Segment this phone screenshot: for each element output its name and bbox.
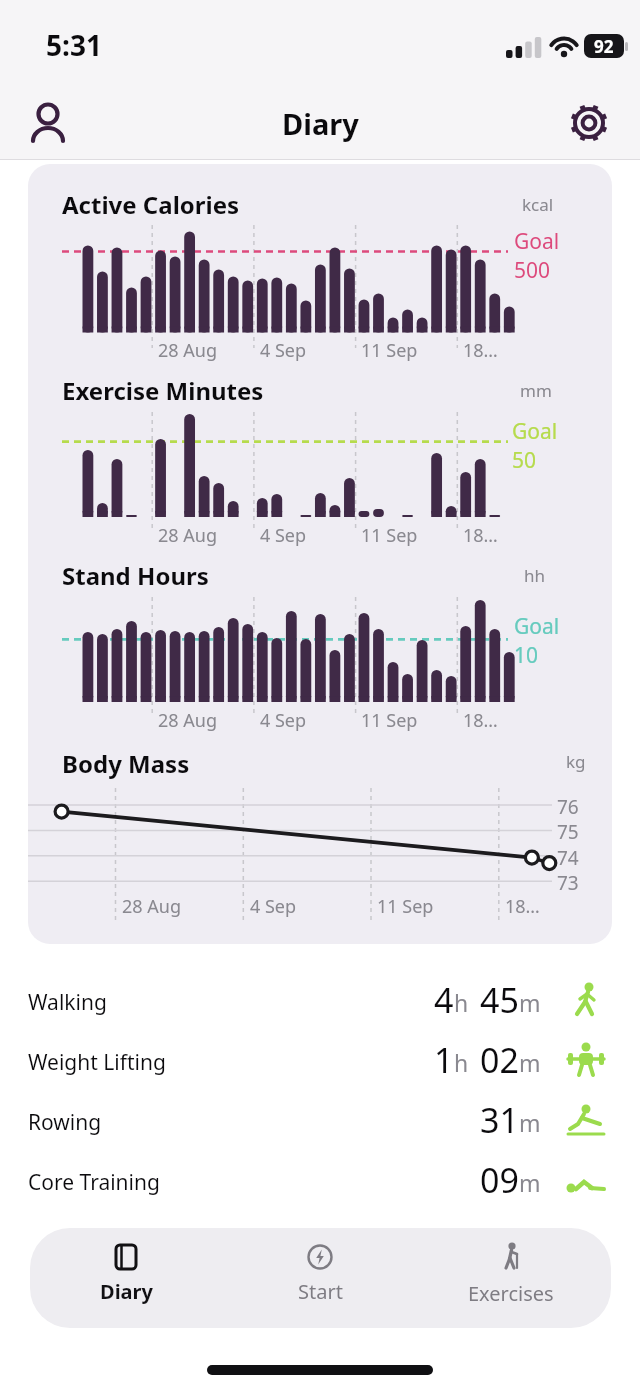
staticText: 1 (434, 1037, 454, 1083)
staticText: Start (298, 1278, 343, 1305)
staticText: m (519, 1107, 541, 1138)
staticText: 09 (480, 1157, 519, 1203)
button[interactable]: Walking (0, 970, 640, 1030)
staticText: 31 (480, 1097, 519, 1143)
button[interactable]: Weight Lifting (0, 1030, 640, 1090)
staticText: 4 Sep (260, 338, 307, 363)
staticText: kg (566, 750, 586, 773)
staticText: Goal (512, 417, 558, 446)
staticText: 45 (480, 977, 519, 1023)
staticText: m (519, 987, 541, 1018)
staticText: Goal (514, 612, 560, 641)
staticText: 18… (505, 894, 540, 919)
staticText: h (454, 1047, 469, 1078)
staticText: mm (520, 379, 552, 402)
staticText: 02 (480, 1037, 519, 1083)
staticText: Exercise Minutes (62, 374, 264, 407)
staticText: 75 (557, 819, 579, 845)
staticText: 11 Sep (361, 708, 418, 733)
staticText: 18… (463, 708, 498, 733)
staticText: 74 (557, 845, 579, 871)
button[interactable]: Core Training (0, 1150, 640, 1210)
button[interactable] (24, 98, 72, 148)
staticText: 18… (463, 523, 498, 548)
staticText: 500 (514, 256, 551, 285)
staticText: 76 (557, 794, 579, 820)
staticText: Diary (282, 104, 359, 143)
staticText: 50 (512, 446, 537, 475)
staticText: m (519, 1167, 541, 1198)
staticText: 92 (594, 35, 614, 58)
button[interactable] (565, 98, 613, 148)
staticText: hh (524, 564, 546, 587)
staticText: 73 (557, 870, 579, 896)
staticText: Active Calories (62, 188, 240, 221)
staticText: Diary (100, 1278, 153, 1305)
staticText: 18… (463, 338, 498, 363)
staticText: Goal (514, 227, 560, 256)
staticText: m (519, 1047, 541, 1078)
staticText: 4 Sep (260, 708, 307, 733)
staticText: 4 (434, 977, 454, 1023)
button[interactable]: Rowing (0, 1090, 640, 1150)
staticText: Walking (28, 988, 107, 1017)
staticText: Exercises (468, 1280, 554, 1307)
staticText: 28 Aug (122, 894, 181, 919)
staticText: Stand Hours (62, 559, 209, 592)
staticText: 28 Aug (158, 708, 217, 733)
staticText: Body Mass (62, 747, 190, 780)
staticText: 4 Sep (260, 523, 307, 548)
staticText: Weight Lifting (28, 1048, 166, 1077)
staticText: kcal (522, 193, 554, 216)
button[interactable]: Diary (66, 1234, 186, 1314)
staticText: 5:31 (46, 26, 102, 64)
staticText: h (454, 987, 469, 1018)
staticText: Rowing (28, 1108, 102, 1137)
staticText: 11 Sep (361, 338, 418, 363)
staticText: 28 Aug (158, 523, 217, 548)
button[interactable]: Exercises (451, 1234, 571, 1314)
staticText: 10 (514, 641, 539, 670)
staticText: 28 Aug (158, 338, 217, 363)
button[interactable]: Start (260, 1234, 380, 1314)
staticText: 11 Sep (361, 523, 418, 548)
staticText: Core Training (28, 1168, 160, 1197)
staticText: 11 Sep (377, 894, 434, 919)
staticText: 4 Sep (250, 894, 297, 919)
